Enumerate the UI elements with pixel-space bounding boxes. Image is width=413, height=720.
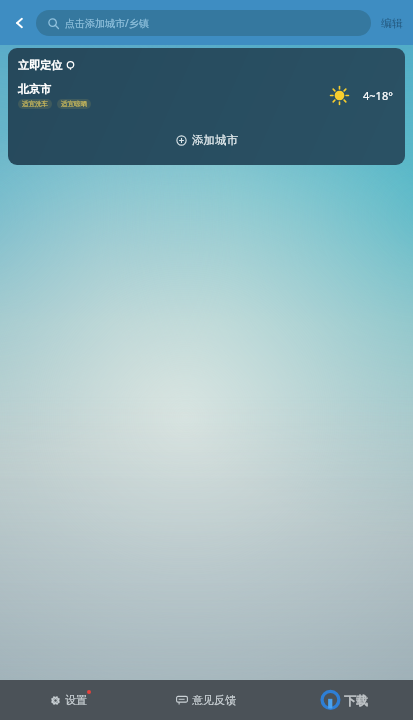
staticText: 设置	[65, 693, 87, 707]
button[interactable]: 设置	[0, 680, 137, 720]
staticText: 添加城市	[192, 133, 238, 147]
staticText: 意见反馈	[192, 693, 236, 707]
button[interactable]: 点击添加城市/乡镇	[36, 10, 371, 36]
staticText: 北京市	[18, 82, 51, 96]
staticText: 下载	[344, 693, 368, 708]
staticText: 编辑	[381, 16, 403, 30]
button[interactable]: 适宜洗车	[18, 99, 52, 109]
staticText: 立即定位	[18, 58, 62, 72]
staticText: 适宜晾晒	[61, 100, 87, 108]
button[interactable]: Back	[6, 9, 34, 37]
button[interactable]: 添加城市	[8, 123, 405, 165]
staticText: 点击添加城市/乡镇	[65, 16, 149, 30]
button[interactable]: 意见反馈	[137, 680, 275, 720]
button[interactable]: 立即定位	[18, 58, 75, 72]
button[interactable]: 适宜晾晒	[57, 99, 91, 109]
button[interactable]: 编辑	[379, 12, 405, 34]
staticText: 4~18°	[363, 88, 393, 103]
staticText: 适宜洗车	[22, 100, 48, 108]
button[interactable]: 北京市	[8, 82, 405, 109]
